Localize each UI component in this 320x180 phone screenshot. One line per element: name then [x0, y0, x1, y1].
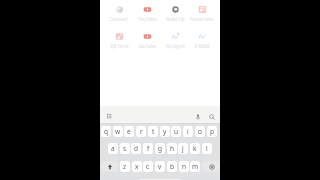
button[interactable]: DJI Fimo: [105, 32, 133, 49]
staticText: g: [158, 144, 162, 153]
button[interactable]: s: [120, 143, 130, 154]
button[interactable]: q: [101, 126, 111, 137]
button[interactable]: a: [108, 143, 118, 154]
button[interactable]: Search: [207, 112, 217, 122]
button[interactable]: v: [155, 161, 165, 172]
button[interactable]: l: [202, 143, 212, 154]
staticText: t: [152, 127, 155, 136]
staticText: q: [104, 127, 108, 136]
staticText: m: [192, 162, 199, 171]
staticText: z: [123, 162, 127, 171]
button[interactable]: n: [179, 161, 189, 172]
button[interactable]: p: [207, 126, 217, 137]
staticText: f: [147, 144, 150, 153]
button[interactable]: InkEdit: [189, 32, 215, 49]
staticText: l: [206, 144, 208, 153]
button[interactable]: r: [136, 126, 146, 137]
staticText: n: [182, 162, 187, 171]
staticText: YouTube: [138, 16, 157, 22]
button[interactable]: w: [113, 126, 123, 137]
staticText: x: [135, 162, 139, 171]
staticText: Newsroom: [190, 16, 214, 22]
staticText: MySignit: [166, 43, 185, 49]
staticText: r: [140, 127, 143, 136]
button[interactable]: d: [131, 143, 141, 154]
button[interactable]: Build Up: [161, 5, 189, 22]
staticText: Build Up: [166, 16, 185, 22]
staticText: InkEdit: [194, 43, 210, 49]
staticText: c: [146, 162, 150, 171]
button[interactable]: Shift: [101, 161, 118, 172]
button[interactable]: f: [143, 143, 153, 154]
button[interactable]: y: [160, 126, 170, 137]
staticText: y: [163, 127, 167, 136]
button[interactable]: t: [148, 126, 158, 137]
button[interactable]: Voice input: [193, 112, 203, 122]
button[interactable]: k: [190, 143, 200, 154]
staticText: w: [115, 127, 121, 136]
button[interactable]: All apps: [104, 111, 114, 121]
button[interactable]: c: [143, 161, 153, 172]
staticText: j: [182, 144, 184, 153]
staticText: s: [123, 144, 127, 153]
button[interactable]: m: [190, 161, 200, 172]
button[interactable]: Backspace: [203, 161, 220, 172]
staticText: a: [111, 144, 115, 153]
staticText: DJI Fimo: [110, 43, 129, 49]
staticText: u: [174, 127, 179, 136]
button[interactable]: YouTube: [133, 5, 161, 22]
button[interactable]: e: [124, 126, 134, 137]
button[interactable]: Camera+: [105, 5, 133, 22]
button[interactable]: MySignit: [161, 32, 189, 49]
button[interactable]: g: [155, 143, 165, 154]
button[interactable]: o: [195, 126, 205, 137]
button[interactable]: u: [171, 126, 181, 137]
staticText: e: [127, 127, 131, 136]
staticText: Camera+: [109, 16, 129, 22]
staticText: d: [134, 144, 138, 153]
staticText: o: [198, 127, 202, 136]
button[interactable]: x: [132, 161, 142, 172]
staticText: i: [187, 127, 189, 136]
button[interactable]: GoTube: [133, 32, 161, 49]
button[interactable]: i: [183, 126, 193, 137]
staticText: h: [170, 144, 175, 153]
staticText: b: [170, 162, 174, 171]
button[interactable]: Newsroom: [189, 5, 215, 22]
button[interactable]: j: [178, 143, 188, 154]
staticText: p: [210, 127, 214, 136]
staticText: k: [193, 144, 197, 153]
button[interactable]: b: [167, 161, 177, 172]
button[interactable]: z: [120, 161, 130, 172]
button[interactable]: h: [167, 143, 177, 154]
staticText: v: [158, 162, 162, 171]
staticText: GoTube: [139, 43, 156, 49]
